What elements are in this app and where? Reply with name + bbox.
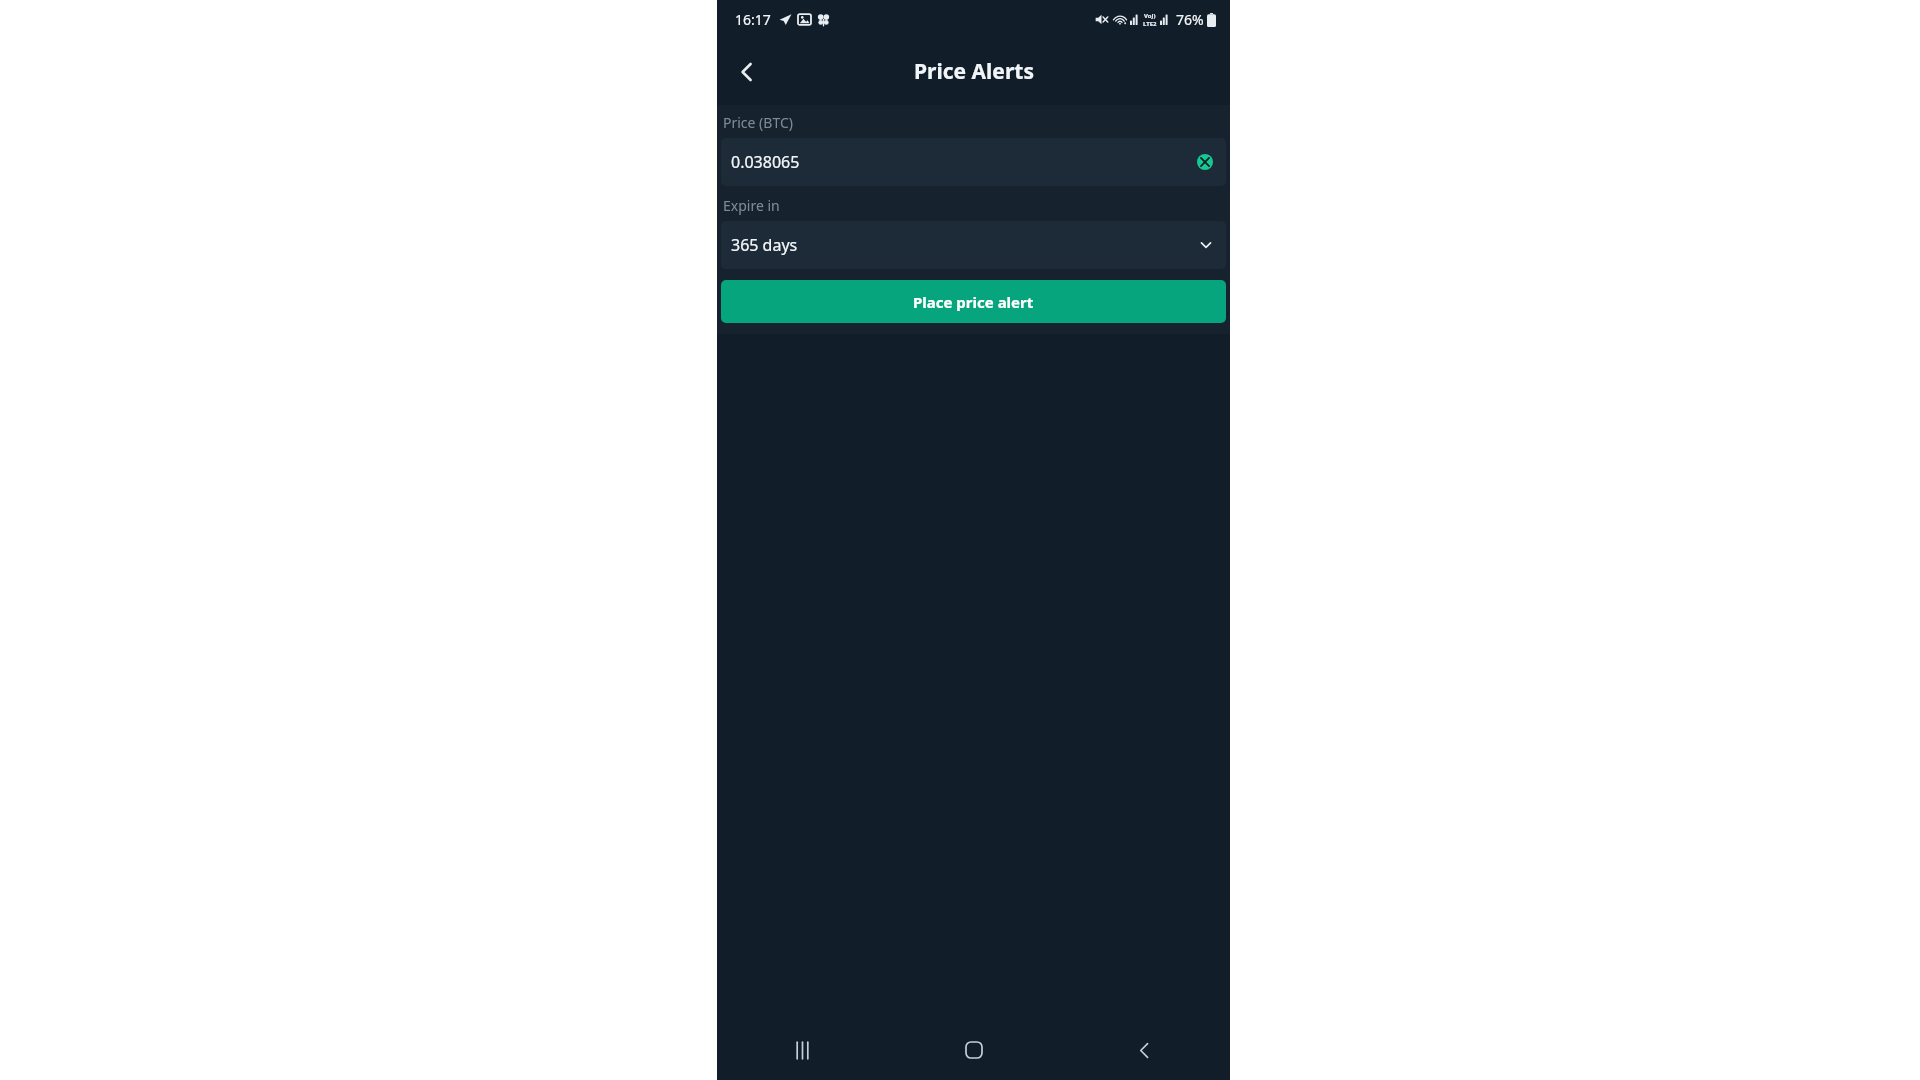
staticText: 16:17 (735, 10, 771, 29)
staticText: 0.038065 (731, 151, 800, 173)
button[interactable]: 365 days (721, 221, 1226, 269)
staticText: Price (BTC) (723, 113, 793, 132)
staticText: VoJ) (1144, 12, 1156, 20)
staticText: 76% (1176, 10, 1204, 29)
staticText: Place price alert (913, 292, 1034, 312)
button[interactable]: Place price alert (721, 280, 1226, 323)
button[interactable]: Back (1059, 1020, 1230, 1080)
staticText: 365 days (731, 234, 798, 256)
staticText: LTE2 (1143, 20, 1157, 28)
staticText: Expire in (723, 196, 780, 215)
button[interactable]: 0.038065 (721, 138, 1226, 186)
button[interactable]: Back (723, 48, 771, 96)
button[interactable]: Home (888, 1020, 1059, 1080)
button[interactable]: Recent apps (717, 1020, 888, 1080)
other: Expand expiry options (1196, 235, 1216, 255)
button[interactable]: Clear price (1192, 149, 1218, 175)
staticText: Price Alerts (914, 57, 1034, 86)
